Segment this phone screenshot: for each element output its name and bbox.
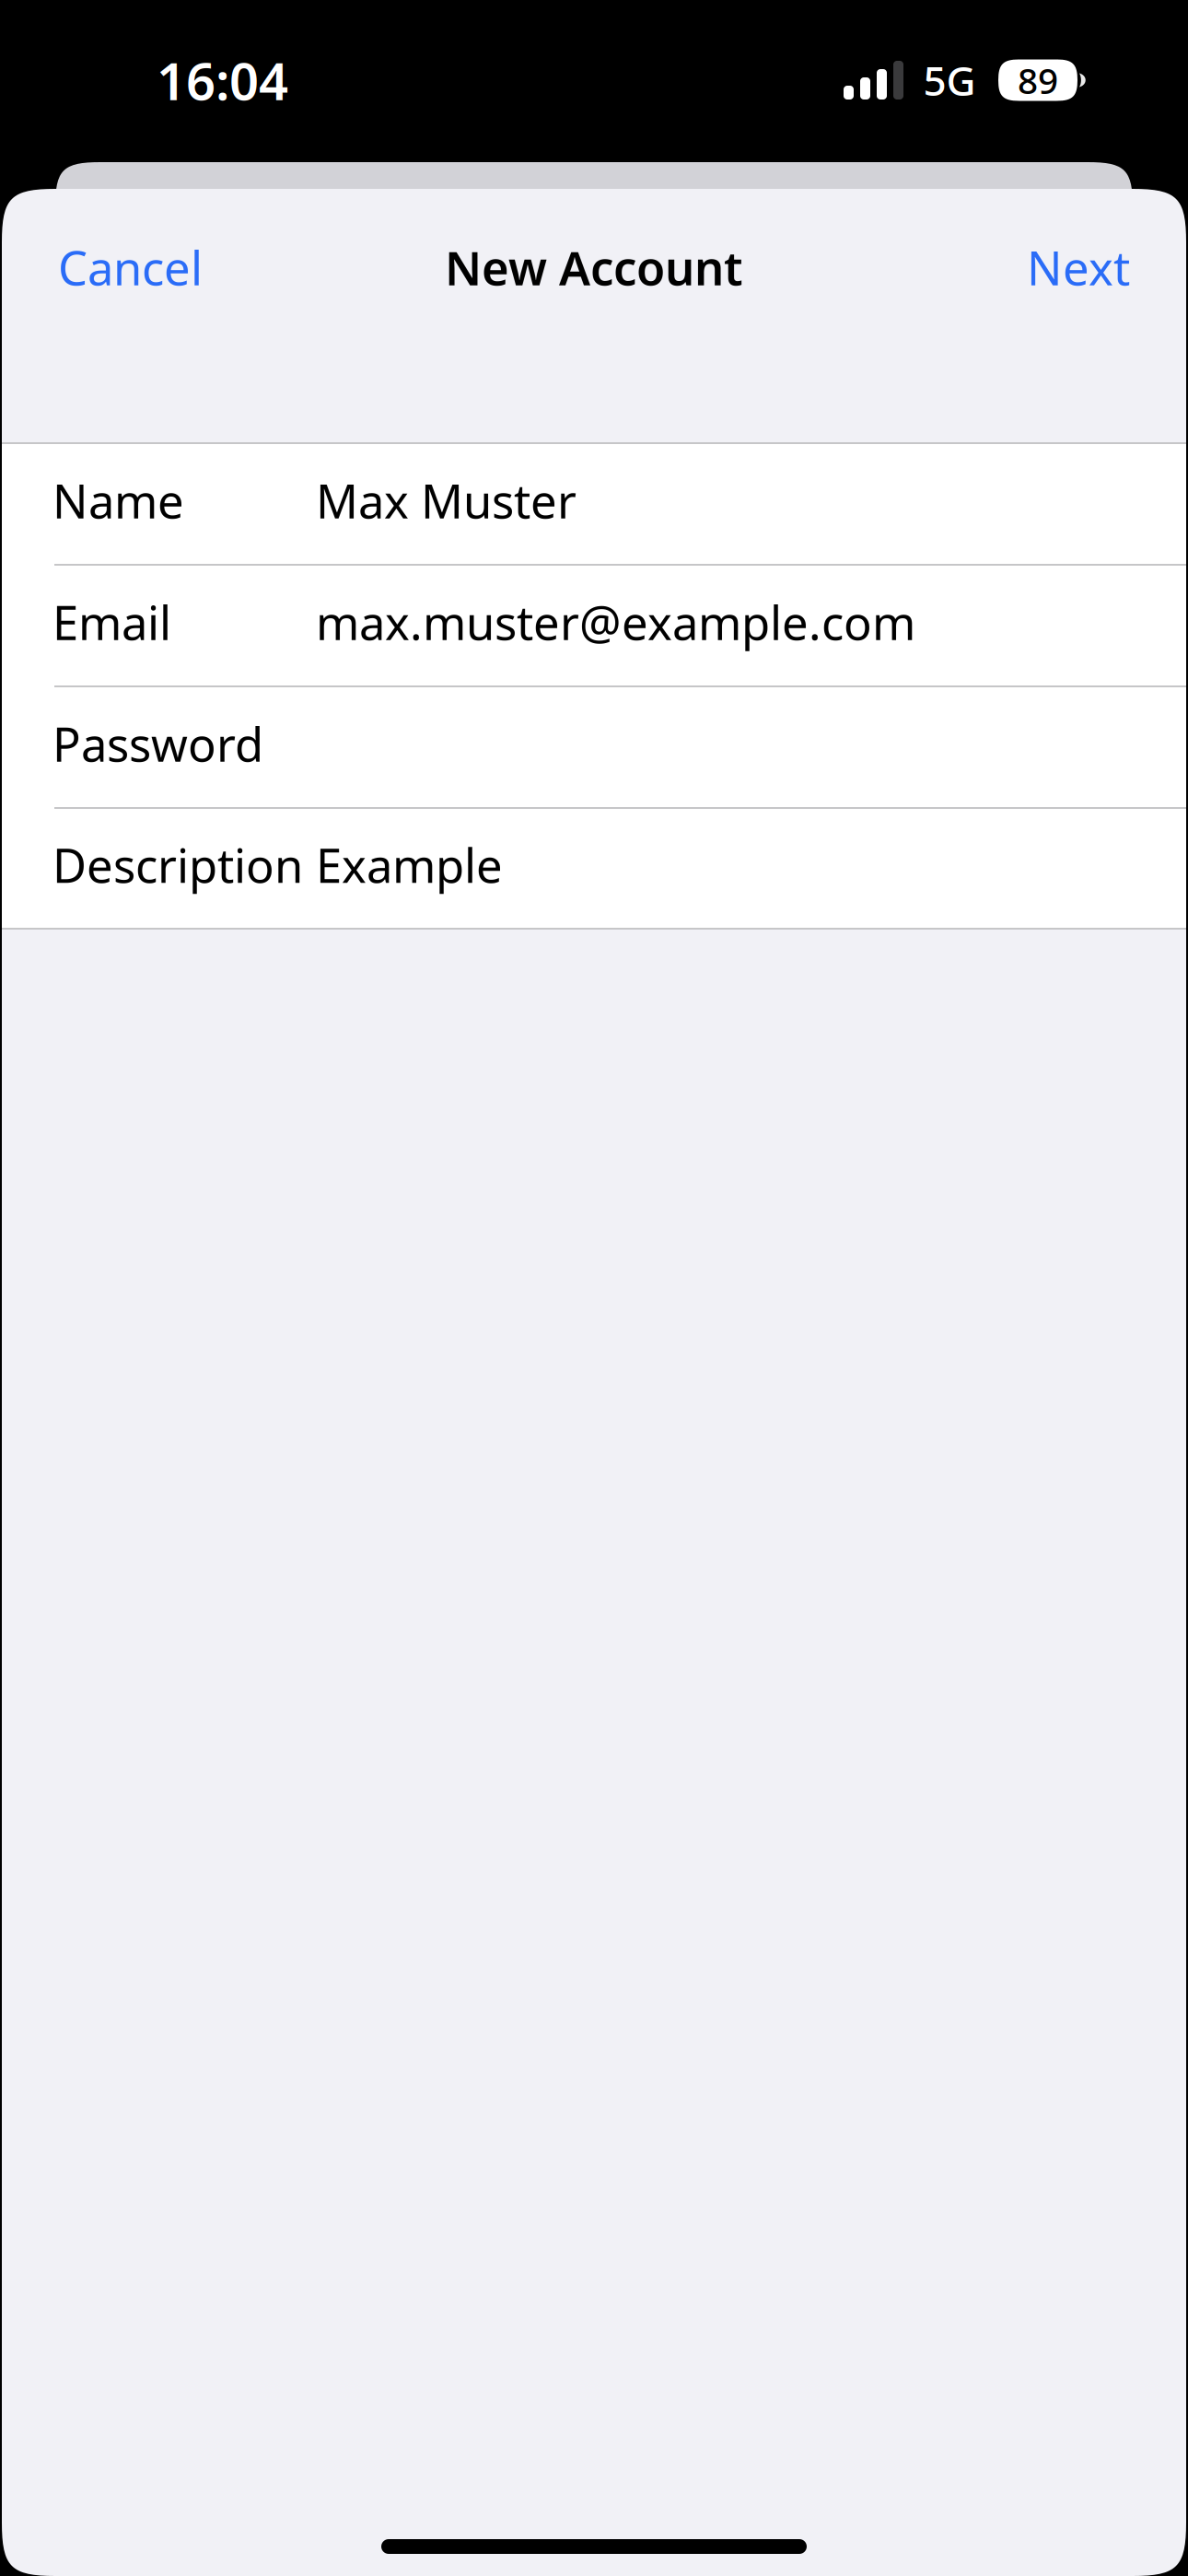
staticText: 16:04 (157, 46, 288, 114)
staticText: 89 (1018, 56, 1058, 104)
staticText: Password (52, 713, 263, 775)
staticText: max.muster@example.com (316, 591, 915, 653)
staticText: New Account (445, 236, 743, 298)
button[interactable]: Password (0, 687, 1188, 807)
staticText: Max Muster (316, 469, 577, 531)
staticText: Next (1027, 236, 1130, 298)
staticText: Description (52, 834, 303, 896)
button[interactable]: Name (0, 444, 1188, 564)
button[interactable]: Cancel (40, 216, 221, 318)
staticText: Cancel (58, 236, 203, 298)
staticText: Name (52, 469, 184, 531)
staticText: Email (52, 591, 171, 653)
staticText: 5G (923, 53, 976, 107)
button[interactable]: Next (1008, 216, 1148, 318)
staticText: Example (316, 834, 503, 896)
button[interactable]: Description (0, 809, 1188, 928)
button[interactable]: Email (0, 566, 1188, 685)
